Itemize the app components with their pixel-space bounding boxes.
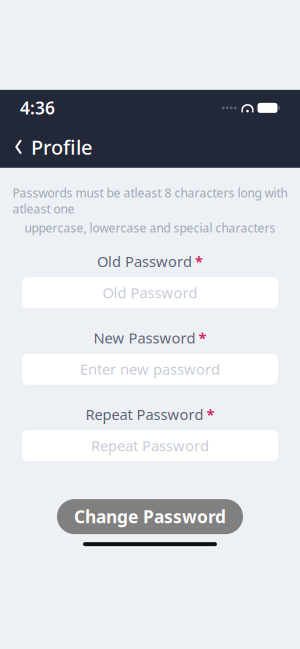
staticText: Repeat Password [91, 436, 209, 455]
staticText: Old Password [102, 283, 197, 302]
staticText: Repeat Password [85, 405, 203, 424]
staticText: * [206, 405, 214, 424]
button[interactable]: Profile [0, 126, 106, 168]
staticText: Passwords must be atleast 8 characters l… [12, 185, 287, 217]
staticText: New Password [93, 328, 195, 348]
staticText: Profile [31, 134, 92, 160]
staticText: Old Password [97, 252, 192, 271]
button[interactable]: Enter new password [22, 354, 278, 385]
button[interactable]: Change Password [57, 499, 243, 534]
staticText: uppercase, lowercase and special charact… [24, 220, 275, 236]
staticText: Change Password [74, 505, 226, 528]
staticText: 4:36 [20, 96, 55, 119]
button[interactable]: Old Password [22, 277, 278, 308]
button[interactable]: Repeat Password [22, 430, 278, 461]
staticText: * [195, 252, 203, 271]
staticText: Enter new password [80, 359, 220, 379]
staticText: * [198, 328, 206, 348]
